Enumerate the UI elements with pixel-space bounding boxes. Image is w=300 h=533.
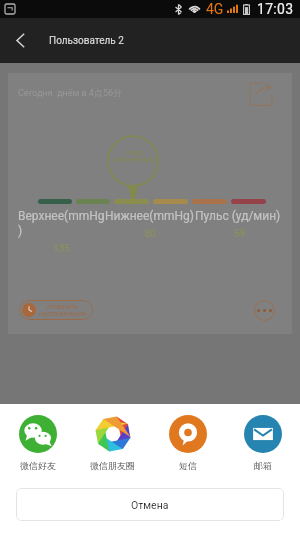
- staticText: ПРЕД: [126, 149, 142, 156]
- staticText: Нижнее(mmHg): [105, 209, 194, 223]
- staticText: Верхнее(mmHg): [18, 209, 105, 238]
- staticText: Пользователь 2: [49, 35, 124, 47]
- staticText: 80: [105, 228, 195, 240]
- button[interactable]: ОТМЕНИТЬ НАПОМИНАНИЯ: [19, 300, 93, 320]
- staticText: 短信: [179, 460, 197, 471]
- staticText: Сегодня днём в 4点56分: [18, 87, 123, 98]
- staticText: 17:03: [257, 1, 294, 17]
- staticText: 135: [18, 243, 105, 255]
- button[interactable]: Back: [0, 18, 40, 63]
- button[interactable]: 微信好友: [0, 415, 75, 471]
- staticText: 59: [195, 228, 284, 240]
- staticText: 邮箱: [254, 460, 272, 471]
- staticText: 微信好友: [20, 460, 56, 471]
- staticText: ОТМЕНИТЬ НАПОМИНАНИЯ: [39, 303, 86, 317]
- button[interactable]: Share: [247, 80, 275, 108]
- button[interactable]: 短信: [150, 415, 225, 471]
- staticText: Пульс (уд/мин): [195, 209, 281, 223]
- staticText: ГИПЕРТЕНЗИЯ: [112, 156, 155, 163]
- button[interactable]: 邮箱: [225, 415, 300, 471]
- button[interactable]: Отмена: [16, 488, 284, 521]
- staticText: Отмена: [131, 499, 169, 511]
- staticText: 微信朋友圈: [90, 460, 135, 471]
- staticText: 4G: [206, 1, 224, 17]
- button[interactable]: More options: [254, 300, 275, 321]
- button[interactable]: 微信朋友圈: [75, 415, 150, 471]
